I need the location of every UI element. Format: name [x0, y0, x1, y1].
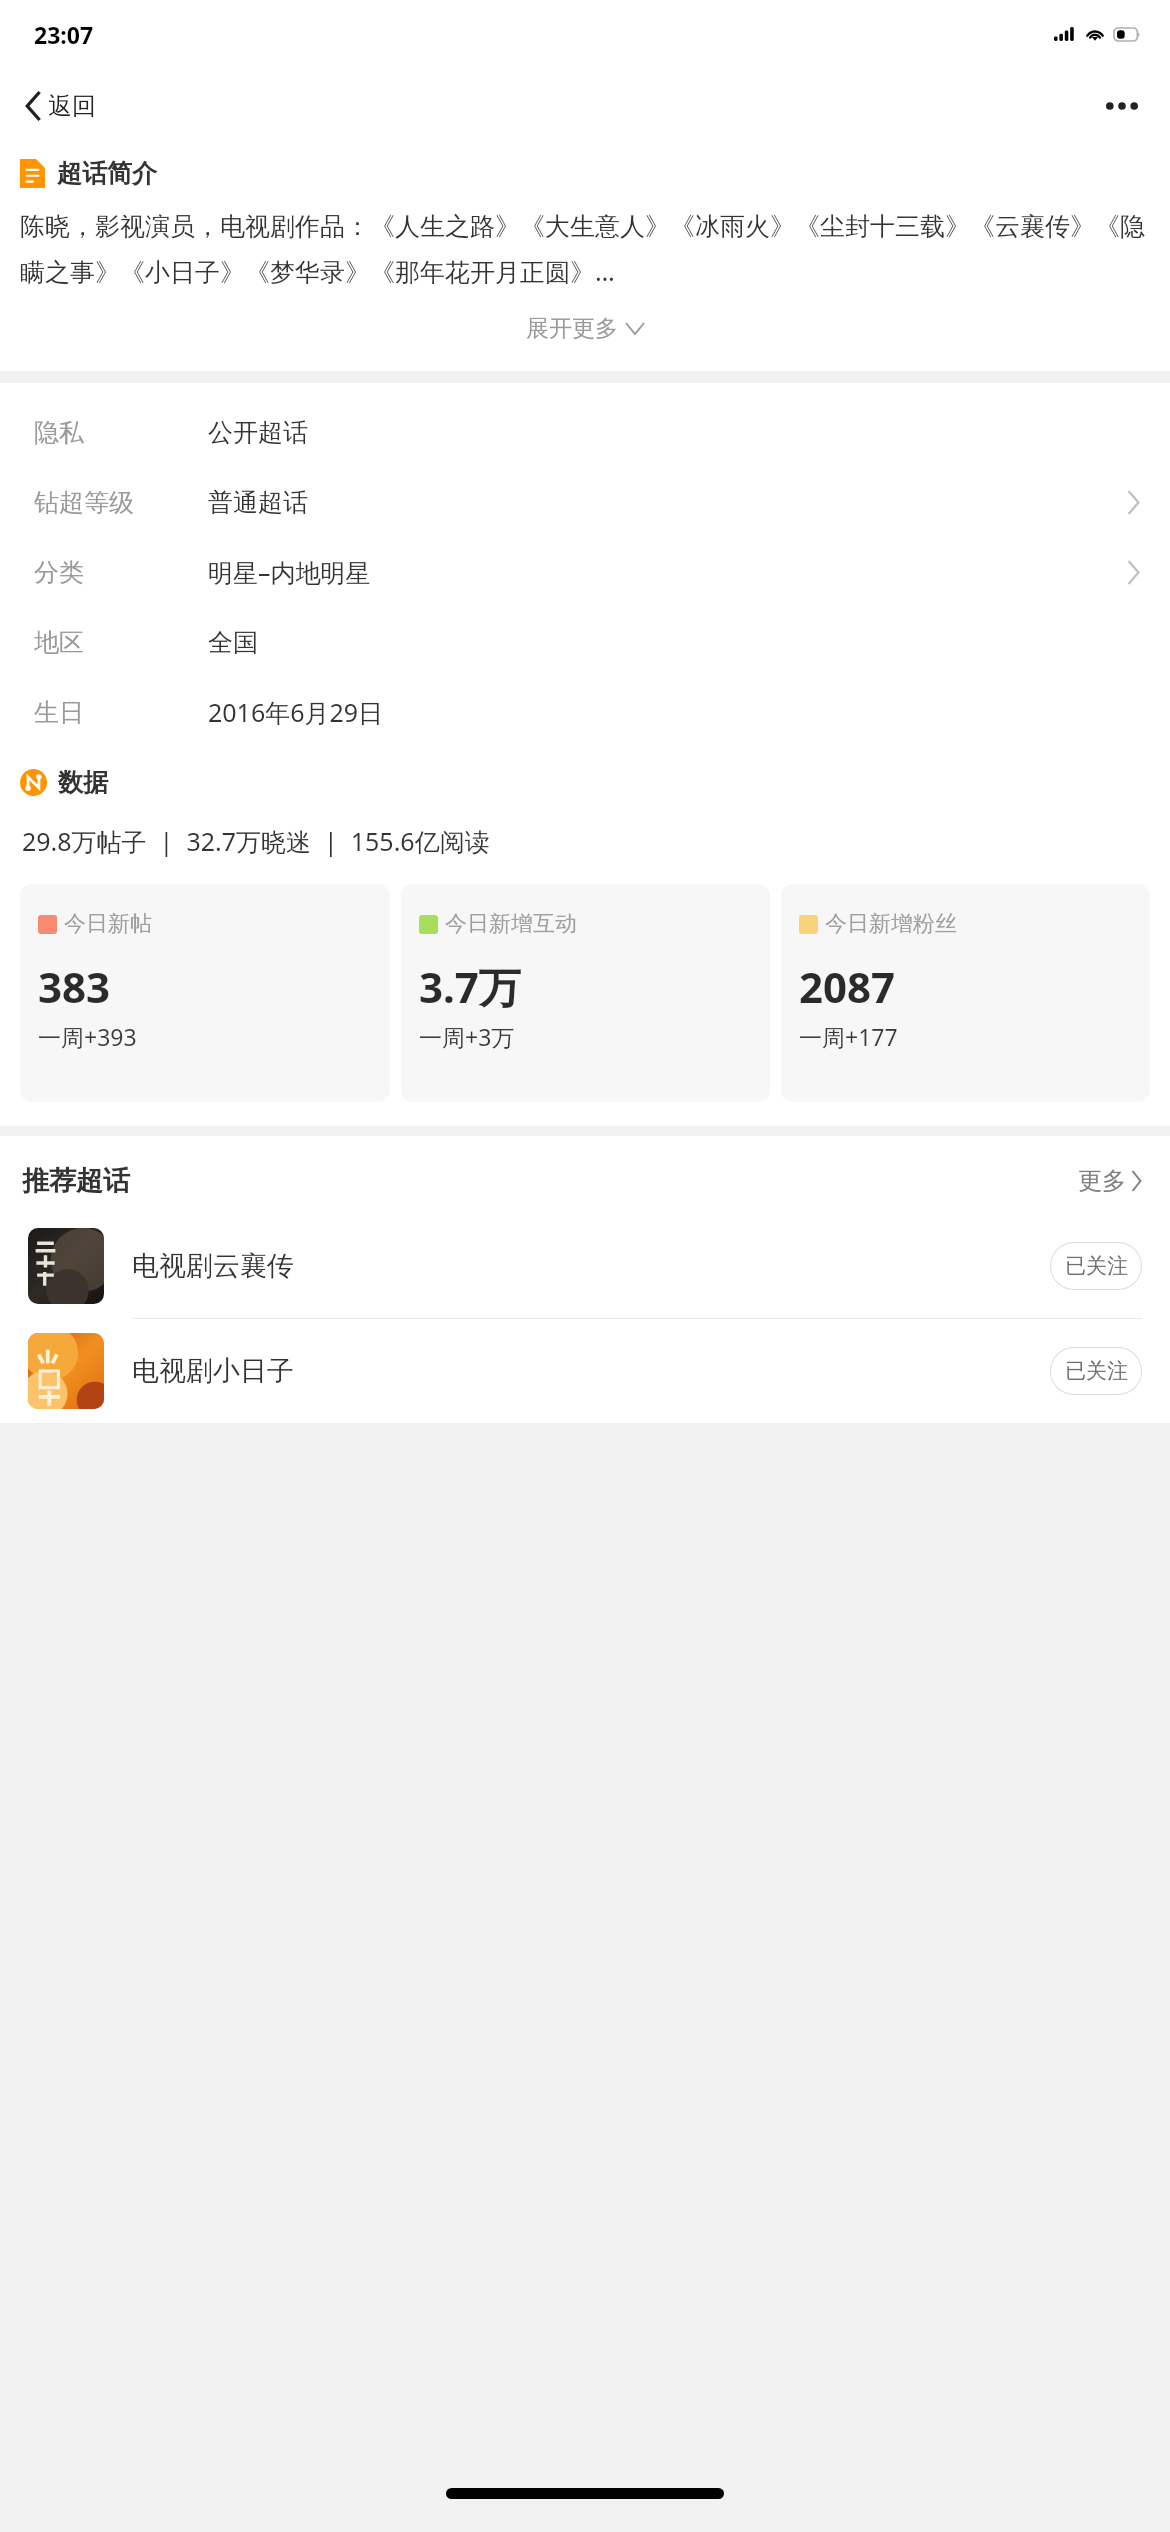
button[interactable]: 今日新帖: [20, 884, 390, 1102]
staticText: 一周+3万: [419, 1021, 515, 1052]
staticText: 3.7万: [419, 958, 521, 1015]
button[interactable]: 更多: [1072, 1162, 1148, 1200]
staticText: 返回: [48, 91, 96, 121]
staticText: 全国: [208, 627, 1140, 658]
staticText: 生日: [34, 697, 84, 728]
staticText: 今日新增粉丝: [825, 910, 957, 938]
staticText: 钻超等级: [34, 487, 134, 518]
staticText: 隐私: [34, 417, 84, 448]
staticText: 展开更多: [526, 314, 618, 343]
staticText: 陈晓，影视演员，电视剧作品：《人生之路》《大生意人》《冰雨火》《尘封十三载》《云…: [20, 211, 1152, 288]
button[interactable]: 钻超等级: [0, 467, 1170, 537]
staticText: 地区: [34, 627, 84, 658]
staticText: 超话简介: [57, 158, 157, 189]
staticText: 2016年6月29日: [208, 695, 1140, 729]
staticText: 数据: [58, 767, 108, 798]
staticText: 更多: [1078, 1166, 1126, 1196]
staticText: 今日新增互动: [445, 910, 577, 938]
button[interactable]: 分类: [0, 537, 1170, 607]
staticText: 2087: [799, 958, 896, 1015]
staticText: 一周+177: [799, 1021, 898, 1052]
button[interactable]: 今日新增互动: [401, 884, 770, 1102]
staticText: 推荐超话: [22, 1164, 130, 1198]
staticText: 383: [38, 958, 111, 1015]
staticText: 已关注: [1065, 1253, 1128, 1279]
button[interactable]: 返回: [16, 83, 106, 129]
staticText: 29.8万帖子 | 32.7万晓迷 | 155.6亿阅读: [22, 824, 490, 858]
staticText: 今日新帖: [64, 910, 152, 938]
staticText: 明星–内地明星: [208, 555, 1127, 589]
button[interactable]: 已关注: [1050, 1242, 1142, 1290]
button[interactable]: 电视剧云襄传: [0, 1214, 1170, 1318]
staticText: 分类: [34, 557, 84, 588]
staticText: 普通超话: [208, 487, 1127, 518]
button[interactable]: 电视剧小日子: [0, 1319, 1170, 1423]
staticText: 电视剧云襄传: [132, 1249, 1050, 1283]
staticText: 已关注: [1065, 1358, 1128, 1384]
button[interactable]: 今日新增粉丝: [781, 884, 1150, 1102]
staticText: 23:07: [34, 19, 94, 50]
staticText: 公开超话: [208, 417, 1140, 448]
button[interactable]: 已关注: [1050, 1347, 1142, 1395]
staticText: 电视剧小日子: [132, 1354, 1050, 1388]
button[interactable]: 展开更多: [510, 308, 660, 349]
staticText: 一周+393: [38, 1021, 137, 1052]
button[interactable]: More options: [1092, 88, 1152, 124]
